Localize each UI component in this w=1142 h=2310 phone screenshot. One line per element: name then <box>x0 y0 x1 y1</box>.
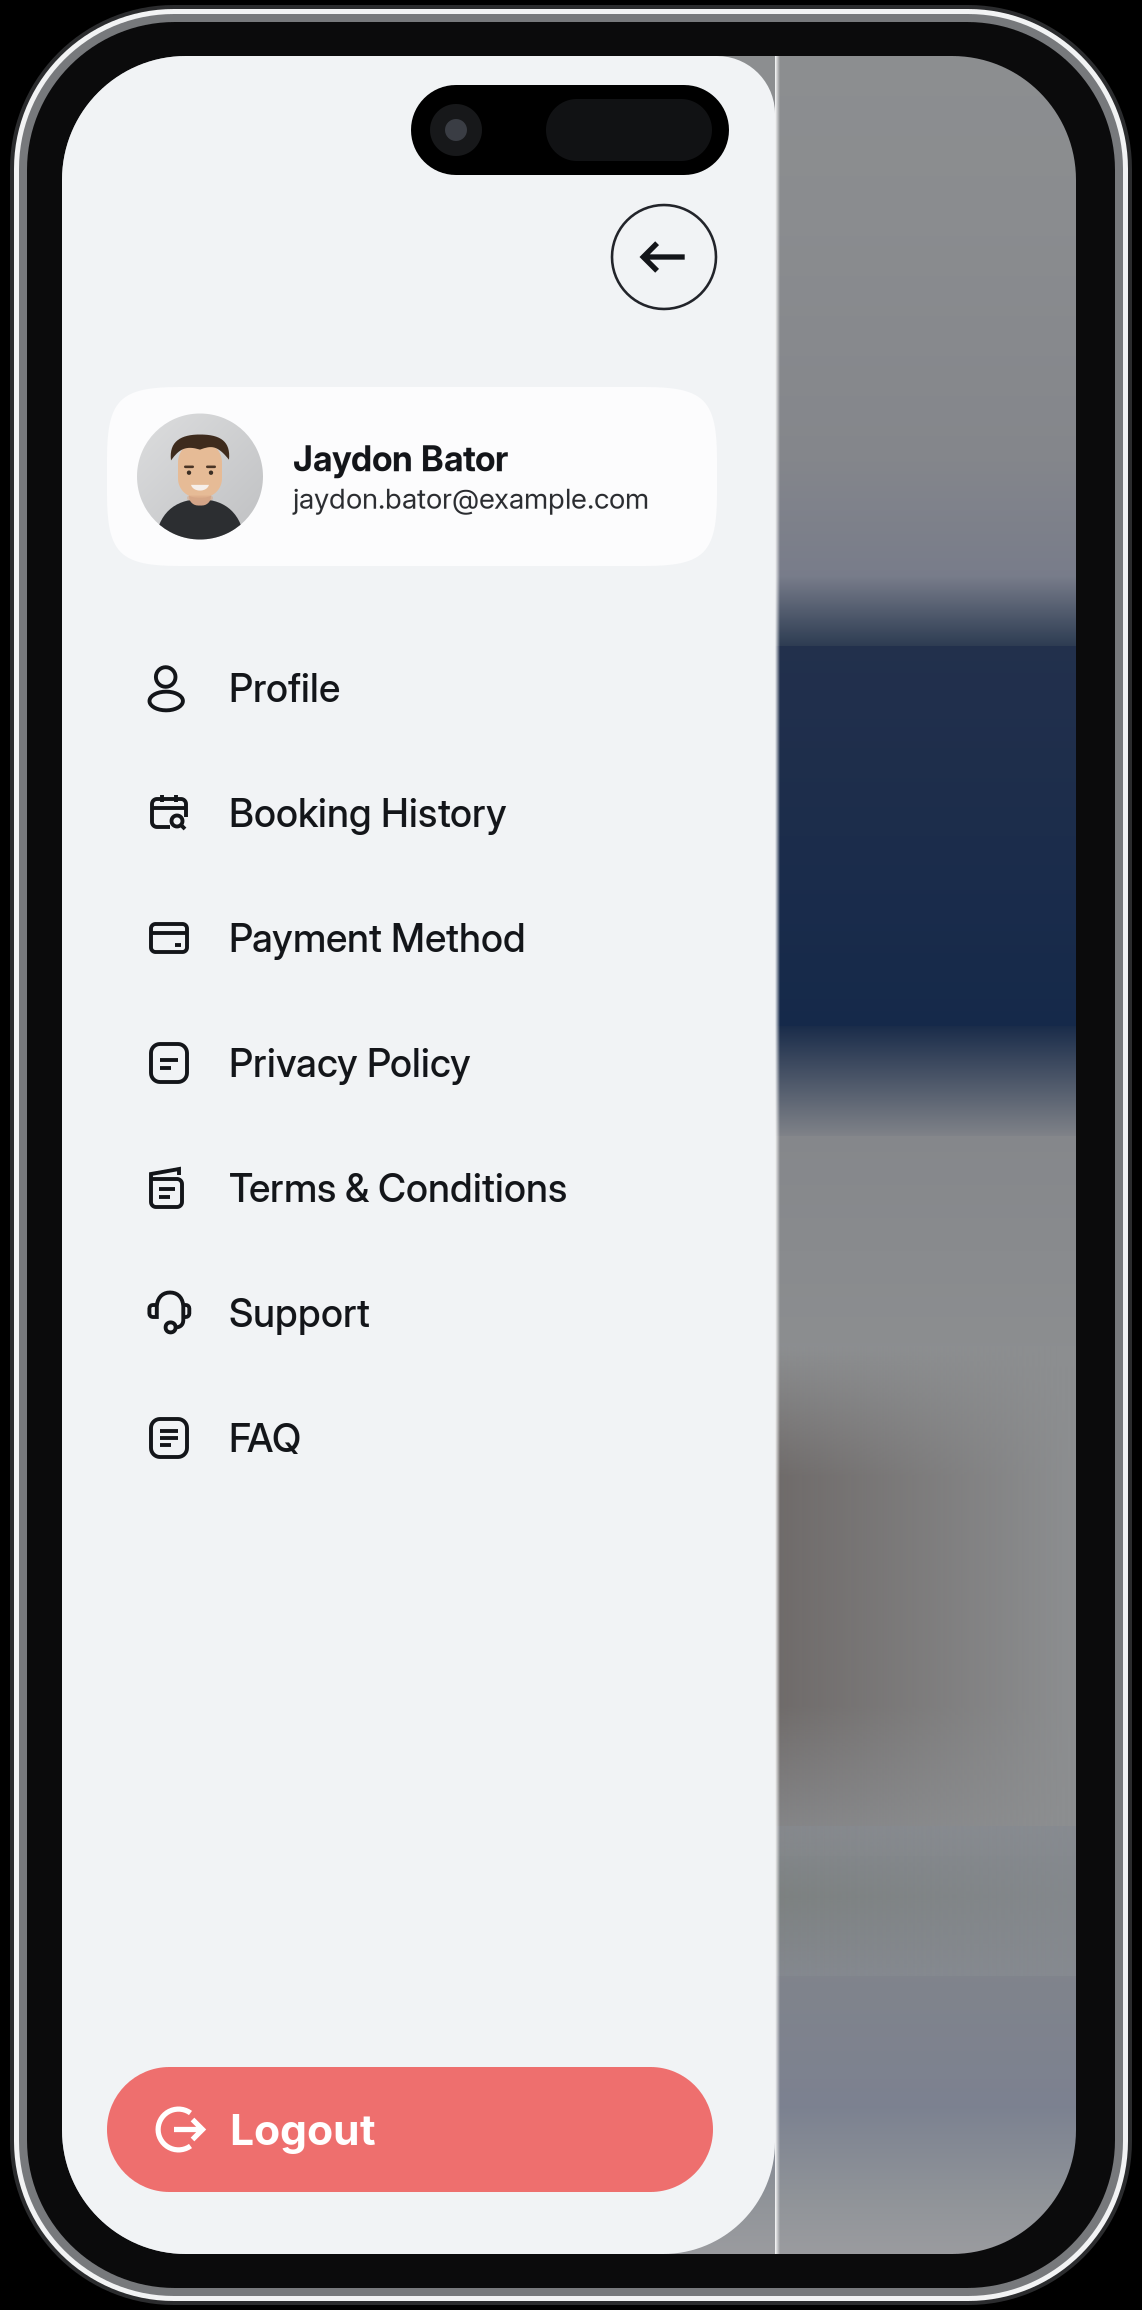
button[interactable]: Terms & Conditions <box>149 1140 765 1236</box>
staticText: jaydon.bator@example.com <box>293 481 649 515</box>
button[interactable]: Support <box>149 1265 765 1361</box>
staticText: Profile <box>229 665 340 711</box>
staticText: Terms & Conditions <box>229 1165 567 1211</box>
button[interactable]: Logout <box>107 2067 713 2192</box>
button[interactable]: FAQ <box>149 1390 765 1486</box>
button[interactable]: Booking History <box>149 765 765 861</box>
staticText: Support <box>229 1290 370 1336</box>
button[interactable]: Jaydon Bator <box>107 387 717 566</box>
staticText: Privacy Policy <box>229 1040 471 1086</box>
staticText: FAQ <box>229 1415 301 1461</box>
button[interactable]: Profile <box>149 640 765 736</box>
button[interactable]: Payment Method <box>149 890 765 986</box>
button[interactable]: Privacy Policy <box>149 1015 765 1111</box>
staticText: Logout <box>230 2104 376 2155</box>
button[interactable]: Back <box>612 205 716 309</box>
staticText: Booking History <box>229 790 507 836</box>
staticText: Payment Method <box>229 915 526 961</box>
staticText: Jaydon Bator <box>293 438 508 479</box>
